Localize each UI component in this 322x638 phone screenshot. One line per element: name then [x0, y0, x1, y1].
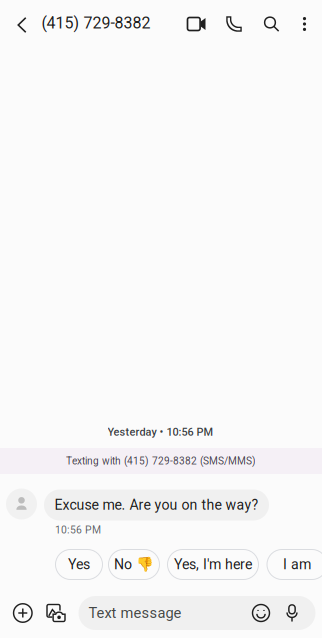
staticText: Yes: [68, 556, 90, 573]
button[interactable]: Back: [6, 5, 38, 45]
button[interactable]: Video call: [180, 4, 212, 44]
staticText: 10:56 PM: [55, 524, 101, 536]
staticText: No 👎: [114, 556, 154, 573]
staticText: (415) 729-8382: [41, 14, 150, 32]
button[interactable]: (415) 729-8382: [36, 6, 156, 40]
button[interactable]: Search: [255, 4, 287, 44]
staticText: Yesterday • 10:56 PM: [107, 426, 213, 438]
staticText: Excuse me. Are you on the way?: [54, 497, 258, 513]
button[interactable]: Open gallery: [39, 592, 73, 634]
button[interactable]: More options: [288, 4, 320, 44]
staticText: Texting with (415) 729-8382 (SMS/MMS): [66, 455, 256, 467]
button[interactable]: Yes, I'm here: [167, 549, 258, 579]
button[interactable]: Voice message: [278, 596, 306, 630]
button[interactable]: Insert emoji: [246, 596, 276, 630]
button[interactable]: Text message: [78, 596, 315, 630]
staticText: Yes, I'm here: [174, 556, 252, 573]
button[interactable]: No 👎: [108, 549, 159, 579]
button[interactable]: Add attachment: [4, 592, 42, 634]
button[interactable]: I am: [267, 549, 322, 579]
button[interactable]: Yes: [55, 549, 102, 579]
staticText: I am: [283, 556, 311, 573]
staticText: Text message: [88, 604, 181, 622]
button[interactable]: Call: [218, 4, 250, 44]
